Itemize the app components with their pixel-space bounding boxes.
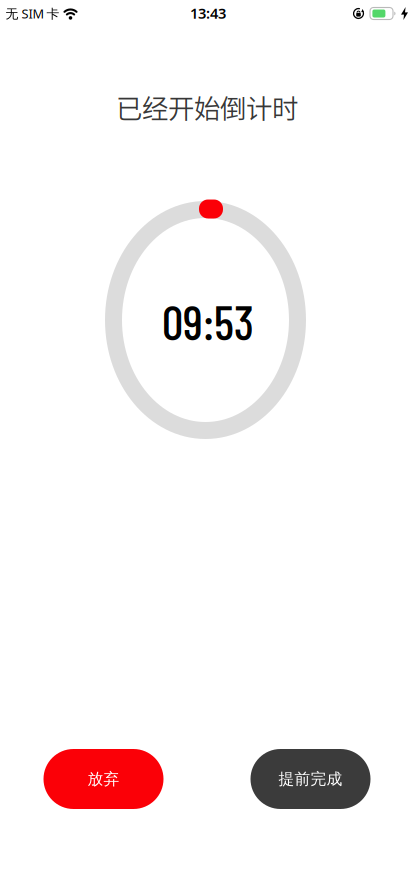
staticText: 放弃 [87,769,119,789]
button[interactable]: 放弃 [43,749,163,809]
staticText: 已经开始倒计时 [116,88,298,126]
staticText: 提前完成 [278,769,342,789]
staticText: 09:53 [162,293,254,350]
button[interactable]: 提前完成 [250,749,370,809]
staticText: 无 SIM 卡 [5,5,59,22]
staticText: 13:43 [190,3,226,23]
